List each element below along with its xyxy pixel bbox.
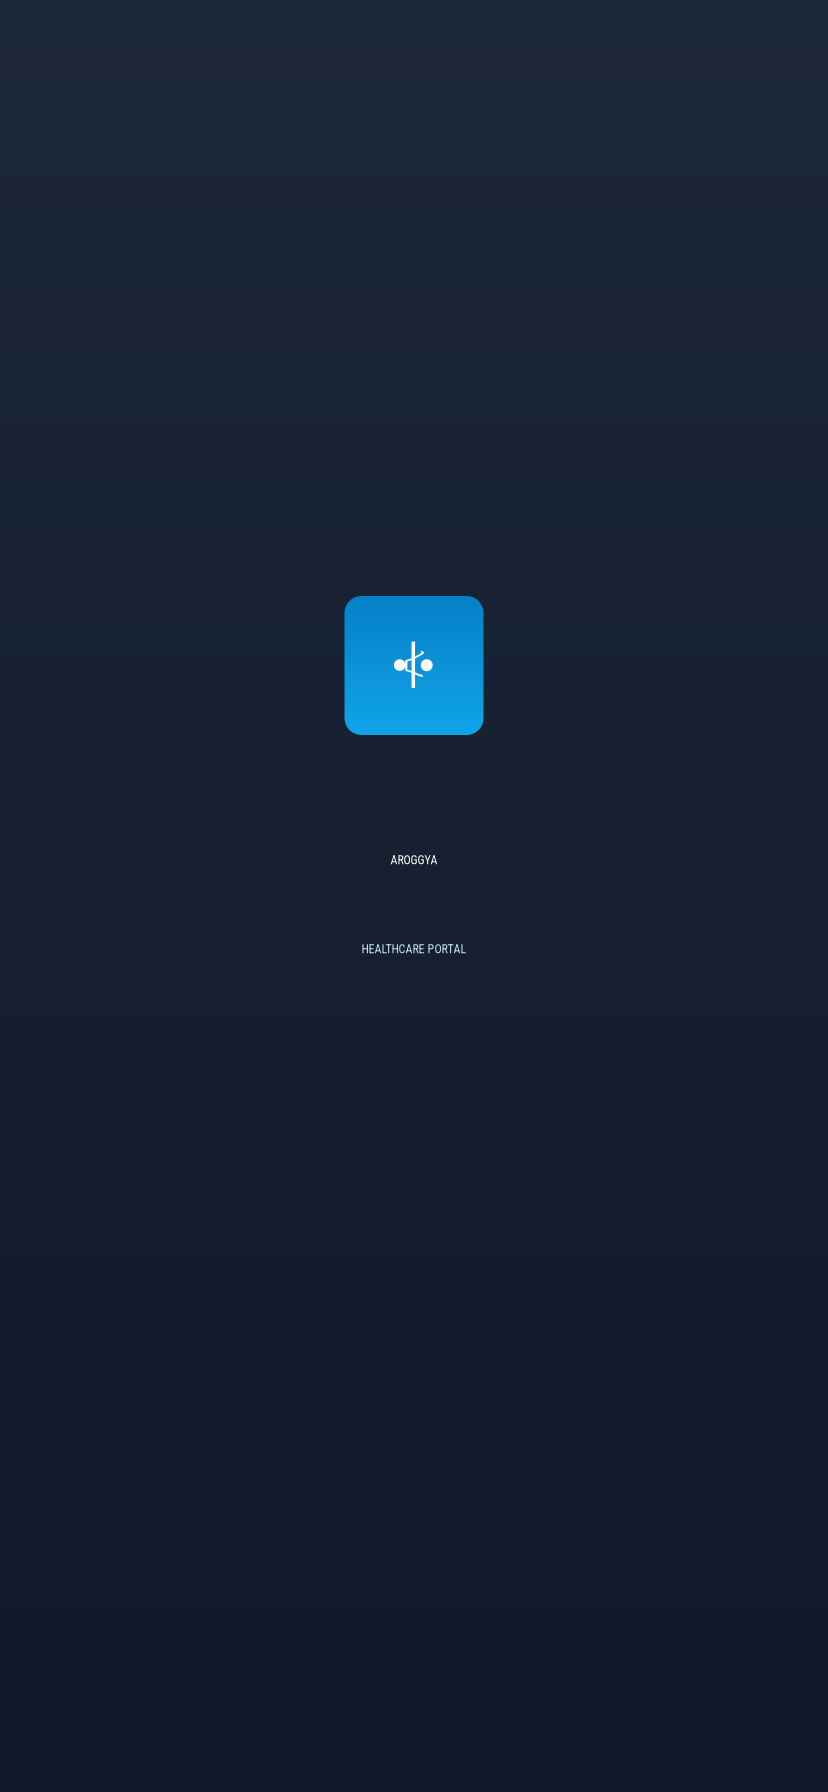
staticText: AROGGYA bbox=[390, 853, 437, 867]
staticText: HEALTHCARE PORTAL bbox=[361, 942, 466, 956]
